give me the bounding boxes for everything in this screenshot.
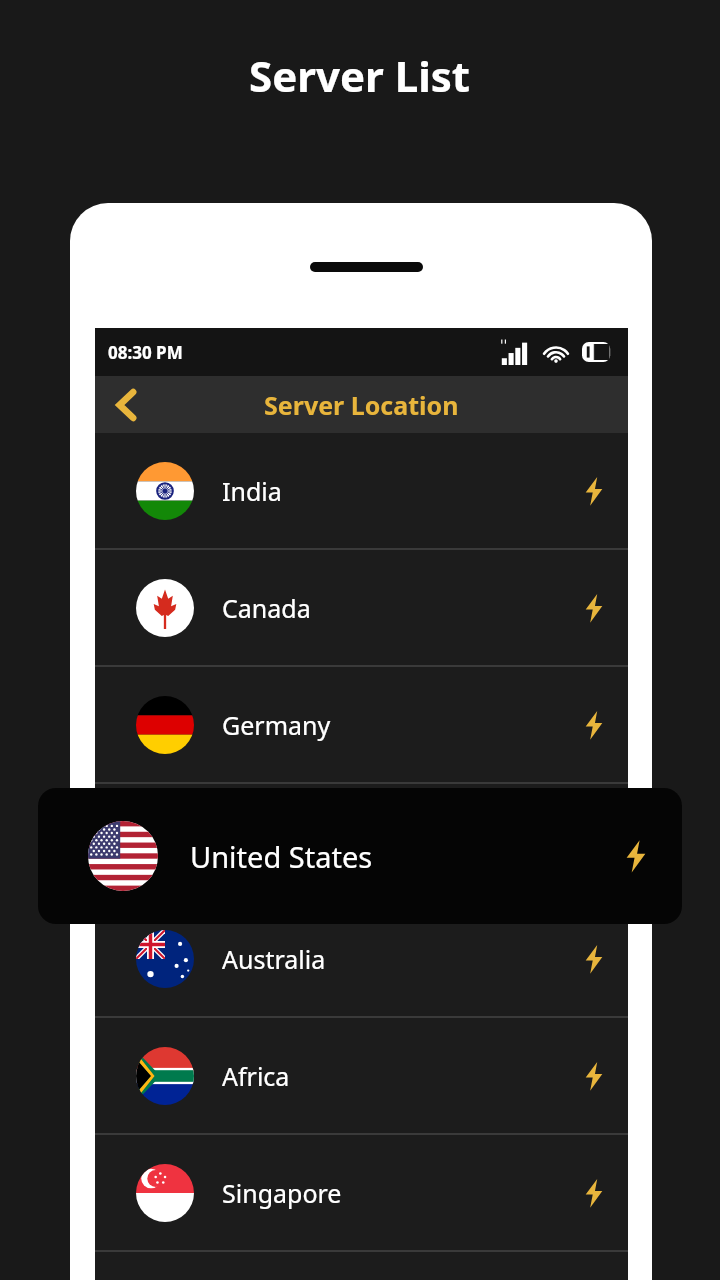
other: Connect — [578, 943, 610, 975]
staticText: 08:30 PM — [108, 341, 183, 364]
other: Connect — [578, 592, 610, 624]
button[interactable]: United States — [95, 784, 628, 899]
staticText: Africa — [222, 1059, 290, 1093]
other: Connect — [578, 1060, 610, 1092]
other: Connect — [578, 709, 610, 741]
staticText: Canada — [222, 591, 311, 625]
other: Connect — [578, 1177, 610, 1209]
staticText: United States — [222, 825, 380, 859]
staticText: Server List — [249, 47, 471, 104]
staticText: Singapore — [222, 1176, 342, 1210]
staticText: Australia — [222, 942, 326, 976]
other: Connect — [578, 475, 610, 507]
staticText: United States — [190, 837, 373, 876]
button[interactable]: India — [95, 433, 628, 548]
staticText: India — [222, 474, 282, 508]
other: Connect — [618, 838, 654, 874]
button[interactable]: Germany — [95, 667, 628, 782]
button[interactable]: Canada — [95, 550, 628, 665]
staticText: Germany — [222, 708, 331, 742]
button[interactable]: Australia — [95, 901, 628, 1016]
button[interactable]: Africa — [95, 1018, 628, 1133]
button[interactable]: Back — [103, 381, 151, 429]
button[interactable]: United States — [38, 788, 682, 924]
staticText: Server Location — [264, 388, 459, 422]
button[interactable]: Singapore — [95, 1135, 628, 1250]
